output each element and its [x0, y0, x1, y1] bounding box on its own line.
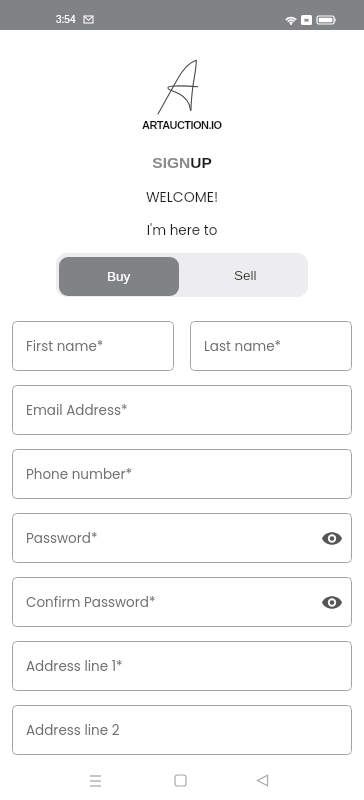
button[interactable]: Address line 2 — [12, 705, 352, 755]
staticText: WELCOME! — [0, 187, 364, 207]
staticText: First name* — [26, 337, 104, 356]
button[interactable]: Confirm Password* — [12, 577, 352, 627]
button[interactable]: Buy — [59, 257, 179, 296]
staticText: SIGNUP — [0, 154, 364, 171]
other: Show password — [322, 596, 342, 609]
staticText: Confirm Password* — [26, 593, 156, 612]
button[interactable]: Recent apps — [73, 759, 117, 800]
staticText: Phone number* — [26, 465, 132, 484]
staticText: Buy — [107, 269, 131, 284]
other: Show password — [322, 532, 342, 545]
button[interactable]: Last name* — [190, 321, 352, 371]
staticText: Password* — [26, 529, 98, 548]
button[interactable]: Home — [158, 759, 202, 800]
button[interactable]: Phone number* — [12, 449, 352, 499]
staticText: Sell — [234, 268, 257, 283]
button[interactable]: First name* — [12, 321, 174, 371]
button[interactable]: Address line 1* — [12, 641, 352, 691]
staticText: I'm here to — [0, 221, 364, 240]
staticText: Address line 1* — [26, 657, 123, 676]
button[interactable]: Email Address* — [12, 385, 352, 435]
staticText: Last name* — [204, 337, 282, 356]
staticText: Address line 2 — [26, 721, 120, 740]
button[interactable]: Sell — [182, 253, 308, 297]
button[interactable]: Password* — [12, 513, 352, 563]
staticText: ARTAUCTION.IO — [142, 119, 222, 131]
staticText: 3:54 — [56, 14, 76, 25]
staticText: Email Address* — [26, 401, 128, 420]
button[interactable]: Back — [240, 759, 284, 800]
